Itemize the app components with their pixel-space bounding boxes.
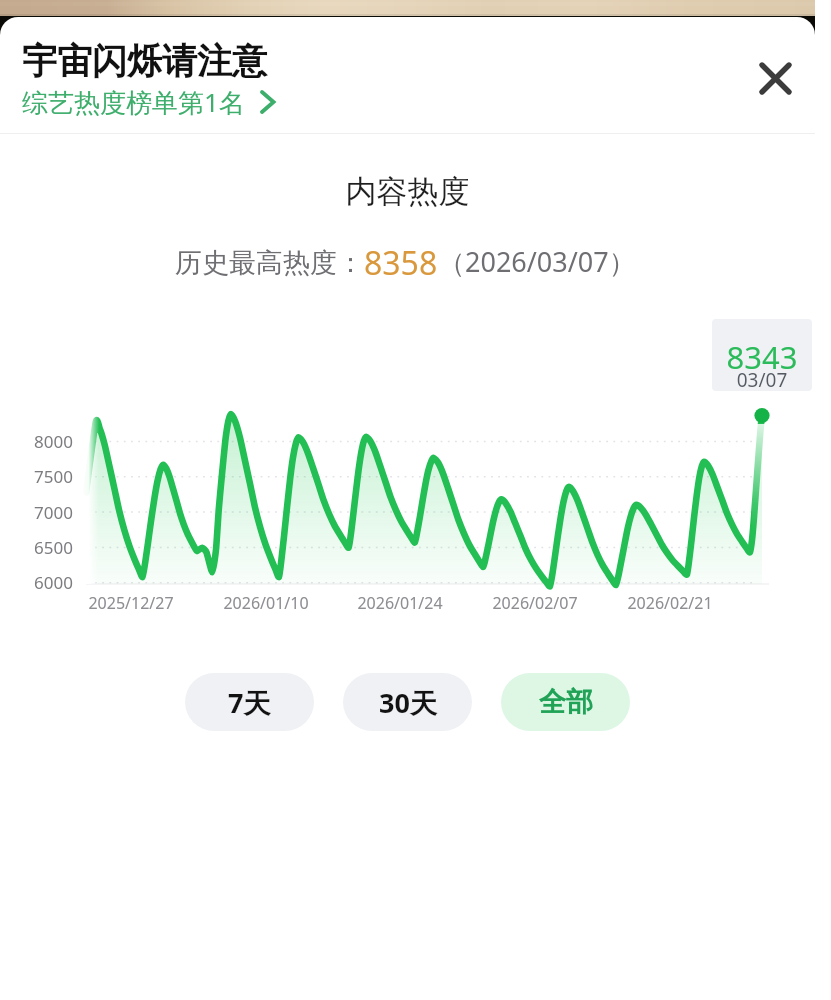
staticText: 2026/01/24 [330, 592, 470, 614]
staticText: 2026/02/07 [465, 592, 605, 614]
button[interactable]: Close [751, 54, 799, 102]
button[interactable]: 7天 [185, 673, 314, 731]
staticText: 全部 [539, 685, 593, 719]
staticText: 2026/02/21 [600, 592, 740, 614]
staticText: 2026/01/10 [196, 592, 336, 614]
button[interactable]: 全部 [501, 673, 630, 731]
staticText: 03/07 [712, 367, 812, 393]
staticText: 6000 [0, 571, 73, 594]
staticText: 7500 [0, 465, 73, 488]
staticText: 7000 [0, 501, 73, 524]
staticText: 8343 [712, 336, 812, 378]
staticText: （2026/03/07） [438, 243, 636, 280]
staticText: 7天 [228, 684, 271, 721]
staticText: 6500 [0, 536, 73, 559]
staticText: 8358 [364, 241, 438, 285]
staticText: 综艺热度榜单第1名 [22, 84, 245, 120]
staticText: 宇宙闪烁请注意 [22, 39, 267, 83]
staticText: 8000 [0, 430, 73, 453]
button[interactable]: 30天 [343, 673, 472, 731]
staticText: 历史最高热度： [175, 246, 364, 280]
button[interactable]: 综艺热度榜单第1名 [22, 84, 276, 120]
staticText: 30天 [379, 684, 437, 721]
staticText: 2025/12/27 [61, 592, 201, 614]
staticText: 内容热度 [0, 172, 815, 211]
